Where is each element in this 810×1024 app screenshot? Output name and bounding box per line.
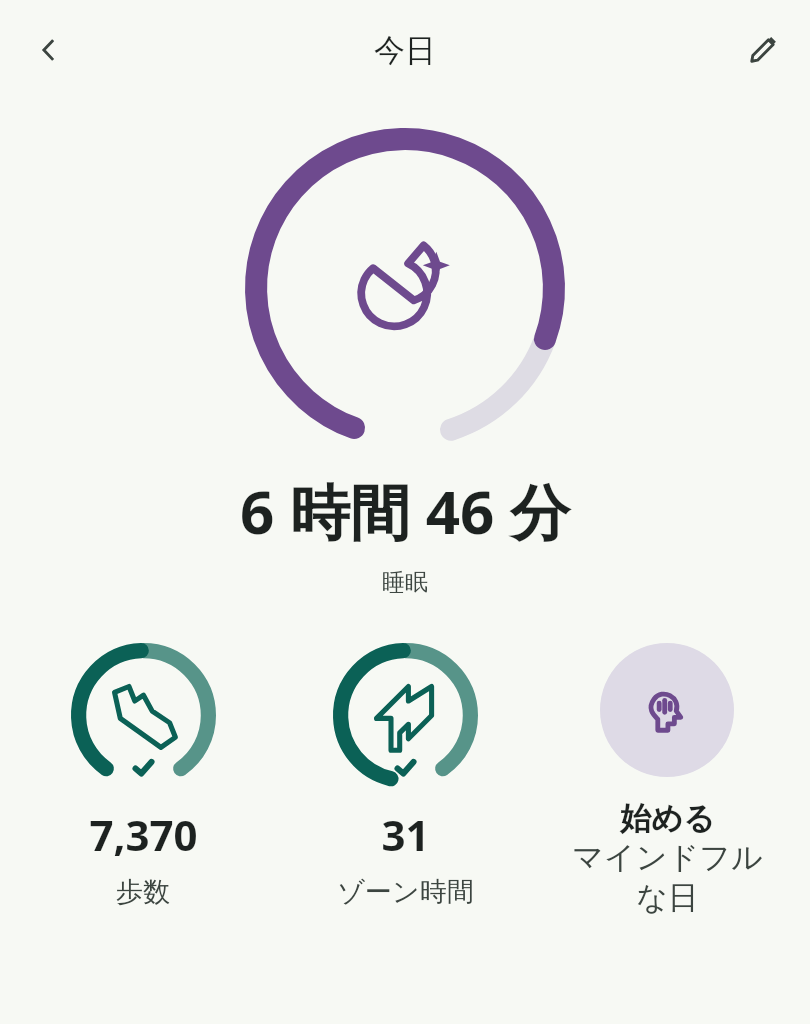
staticText: 歩数: [116, 875, 170, 909]
staticText: 今日: [374, 31, 436, 70]
button[interactable]: Back: [20, 22, 76, 78]
button[interactable]: Zone minutes: [280, 639, 530, 913]
staticText: ゾーン時間: [337, 875, 474, 909]
staticText: 31: [381, 806, 430, 863]
staticText: 始める: [620, 799, 715, 838]
staticText: 7,370: [89, 806, 198, 863]
button[interactable]: Steps: [18, 639, 268, 913]
staticText: 睡眠: [0, 568, 810, 597]
button[interactable]: Start a mindful day: [542, 639, 792, 921]
staticText: 6 時間 46 分: [0, 470, 810, 552]
staticText: マインドフル な日: [572, 838, 763, 917]
button[interactable]: Edit: [734, 21, 792, 79]
